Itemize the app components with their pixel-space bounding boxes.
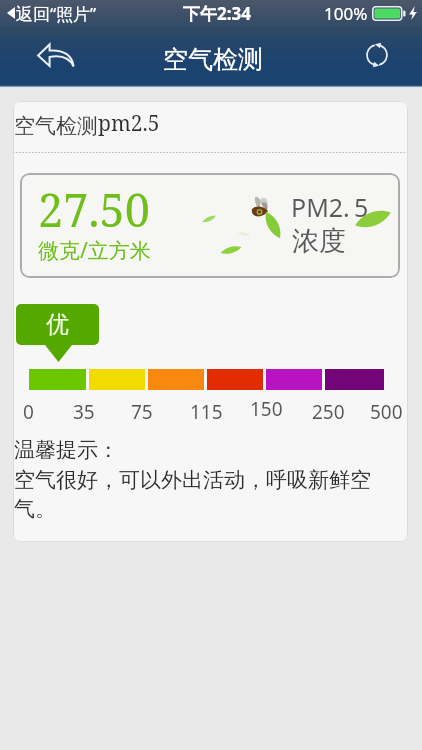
staticText: 下午2:34 (183, 2, 251, 25)
staticText: 优 (46, 310, 69, 339)
staticText: PM2. 5 (291, 190, 369, 224)
staticText: 150 (250, 396, 283, 418)
staticText: 浓度 (292, 224, 346, 258)
staticText: 115 (190, 399, 223, 421)
staticText: 微克/立方米 (38, 236, 151, 265)
staticText: 75 (131, 399, 153, 421)
button[interactable]: Back (32, 34, 78, 76)
staticText: 35 (73, 399, 95, 421)
staticText: 0 (23, 399, 34, 421)
staticText: 空气检测 (14, 113, 98, 139)
staticText: 温馨提示： 空气很好，可以外出活动，呼吸新鲜空气。 (14, 437, 384, 522)
staticText: 返回“照片” (16, 2, 97, 25)
staticText: 250 (312, 399, 345, 421)
staticText: pm2.5 (98, 109, 160, 138)
staticText: 500 (370, 399, 403, 421)
staticText: 空气检测 (163, 44, 263, 75)
staticText: 100% (324, 2, 368, 25)
button[interactable]: Refresh (355, 34, 399, 76)
staticText: 27.50 (38, 179, 150, 240)
